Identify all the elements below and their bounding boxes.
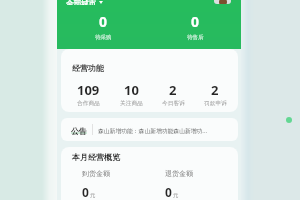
staticText: 到货金额 xyxy=(82,169,110,178)
staticText: 109 xyxy=(77,81,100,99)
button[interactable]: 10 xyxy=(110,81,152,107)
staticText: 森山新增功能：森山新增功能森山新增功... xyxy=(98,127,230,135)
staticText: 经营功能 xyxy=(72,63,104,73)
staticText: 待采购 xyxy=(95,34,112,41)
staticText: 本月经营概览 xyxy=(72,152,120,162)
button[interactable]: 109 xyxy=(67,81,110,107)
staticText: 元 xyxy=(90,192,96,199)
button[interactable]: 2 xyxy=(194,81,236,107)
staticText: 2 xyxy=(211,81,219,99)
staticText: 公告 xyxy=(71,126,87,136)
button[interactable]: 2 xyxy=(152,81,194,107)
staticText: 关注商品 xyxy=(120,100,143,107)
staticText: 待售后 xyxy=(187,34,204,41)
button[interactable]: 0 xyxy=(149,12,241,41)
staticText: 0 xyxy=(82,184,89,200)
staticText: 0 xyxy=(99,12,108,31)
button[interactable]: 全部城市 xyxy=(66,0,103,5)
staticText: 罚款申诉 xyxy=(204,100,227,107)
button[interactable]: 0 xyxy=(57,12,149,41)
staticText: 0 xyxy=(165,184,172,200)
staticText: 合作商品 xyxy=(77,100,100,107)
staticText: 2 xyxy=(169,81,177,99)
staticText: 今日客诉 xyxy=(162,100,185,107)
staticText: 10 xyxy=(124,81,139,99)
staticText: 全部城市 xyxy=(66,0,96,5)
staticText: 退货金额 xyxy=(165,169,193,178)
staticText: 0 xyxy=(191,12,200,31)
button[interactable]: Profile xyxy=(214,0,231,4)
button[interactable]: 公告 xyxy=(61,118,238,141)
staticText: 元 xyxy=(173,192,179,199)
